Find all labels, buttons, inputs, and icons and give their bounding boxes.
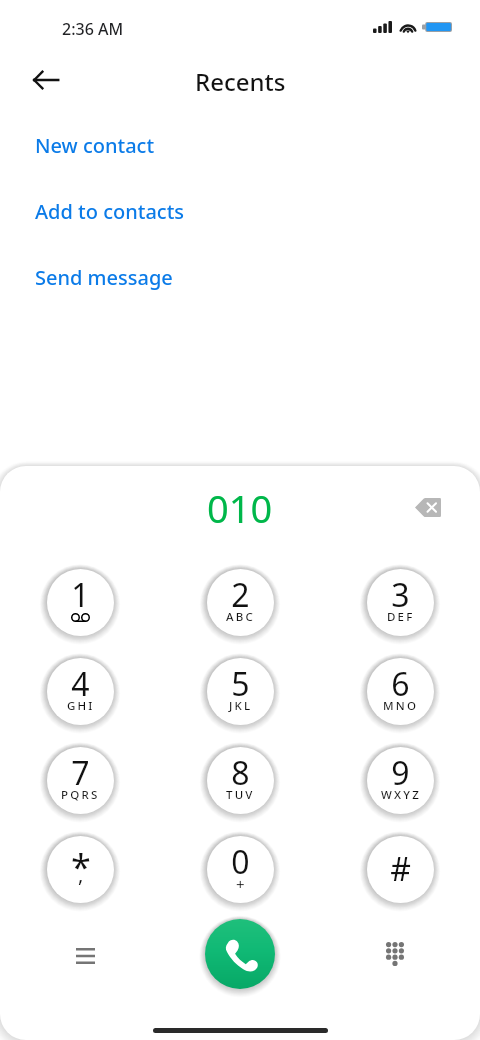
staticText: + (236, 874, 245, 894)
button[interactable]: 5 (197, 648, 283, 734)
staticText: * (71, 842, 91, 891)
button[interactable]: 9 (357, 737, 443, 823)
button[interactable]: Back (22, 56, 70, 104)
button[interactable]: # (357, 826, 443, 912)
button[interactable]: 3 (357, 559, 443, 645)
button[interactable]: 7 (37, 737, 123, 823)
staticText: 3 (391, 573, 410, 617)
staticText: # (390, 847, 411, 891)
staticText: 7 (71, 751, 90, 795)
staticText: 6 (391, 662, 410, 706)
button[interactable]: Dialpad (363, 922, 427, 986)
button[interactable]: 4 (37, 648, 123, 734)
button[interactable]: Add to contacts (0, 178, 480, 244)
button[interactable]: 6 (357, 648, 443, 734)
staticText: PQRS (61, 787, 100, 803)
button[interactable]: New contact (0, 112, 480, 178)
staticText: DEF (387, 609, 415, 625)
button[interactable]: 8 (197, 737, 283, 823)
staticText: 5 (231, 662, 250, 706)
staticText: Recents (195, 65, 286, 98)
button[interactable]: Call (205, 919, 275, 989)
button[interactable]: 1 (37, 559, 123, 645)
button[interactable]: Menu (53, 922, 117, 986)
staticText: GHI (67, 698, 95, 714)
staticText: New contact (35, 132, 155, 159)
staticText: Send message (35, 264, 173, 291)
staticText: 1 (71, 573, 90, 617)
staticText: ABC (226, 609, 255, 625)
staticText: 2 (231, 573, 250, 617)
button[interactable]: Send message (0, 244, 480, 310)
staticText: 0 (231, 840, 250, 884)
staticText: 9 (391, 751, 410, 795)
staticText: Add to contacts (35, 198, 185, 225)
staticText: 010 (207, 482, 273, 534)
staticText: , (78, 861, 84, 888)
staticText: WXYZ (381, 787, 421, 803)
staticText: 4 (71, 662, 90, 706)
staticText: 2:36 AM (62, 18, 124, 40)
staticText: JKL (229, 698, 253, 714)
button[interactable]: Backspace (404, 483, 452, 531)
staticText: TUV (226, 787, 255, 803)
button[interactable]: 0 (197, 826, 283, 912)
staticText: 8 (231, 751, 250, 795)
button[interactable]: * (37, 826, 123, 912)
button[interactable]: 2 (197, 559, 283, 645)
staticText: MNO (383, 698, 419, 714)
